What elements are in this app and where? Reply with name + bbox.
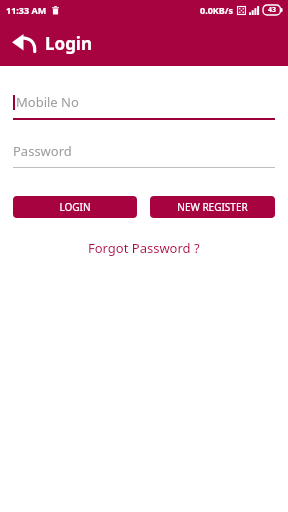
staticText: Forgot Password ?	[88, 239, 200, 257]
staticText: NEW REGISTER	[177, 200, 248, 214]
staticText: 43	[268, 5, 277, 15]
staticText: Password	[13, 142, 72, 160]
button[interactable]: Password	[0, 142, 288, 168]
button[interactable]: Mobile No	[0, 93, 288, 120]
staticText: LOGIN	[59, 200, 91, 214]
staticText: Login	[45, 32, 93, 55]
button[interactable]: LOGIN	[13, 196, 137, 218]
staticText: 0.0KB/s	[200, 4, 234, 16]
staticText: Mobile No	[16, 93, 79, 111]
button[interactable]: Back	[6, 26, 40, 60]
button[interactable]: Forgot Password ?	[78, 235, 210, 261]
button[interactable]: NEW REGISTER	[150, 196, 275, 218]
staticText: 11:33 AM	[6, 4, 47, 16]
